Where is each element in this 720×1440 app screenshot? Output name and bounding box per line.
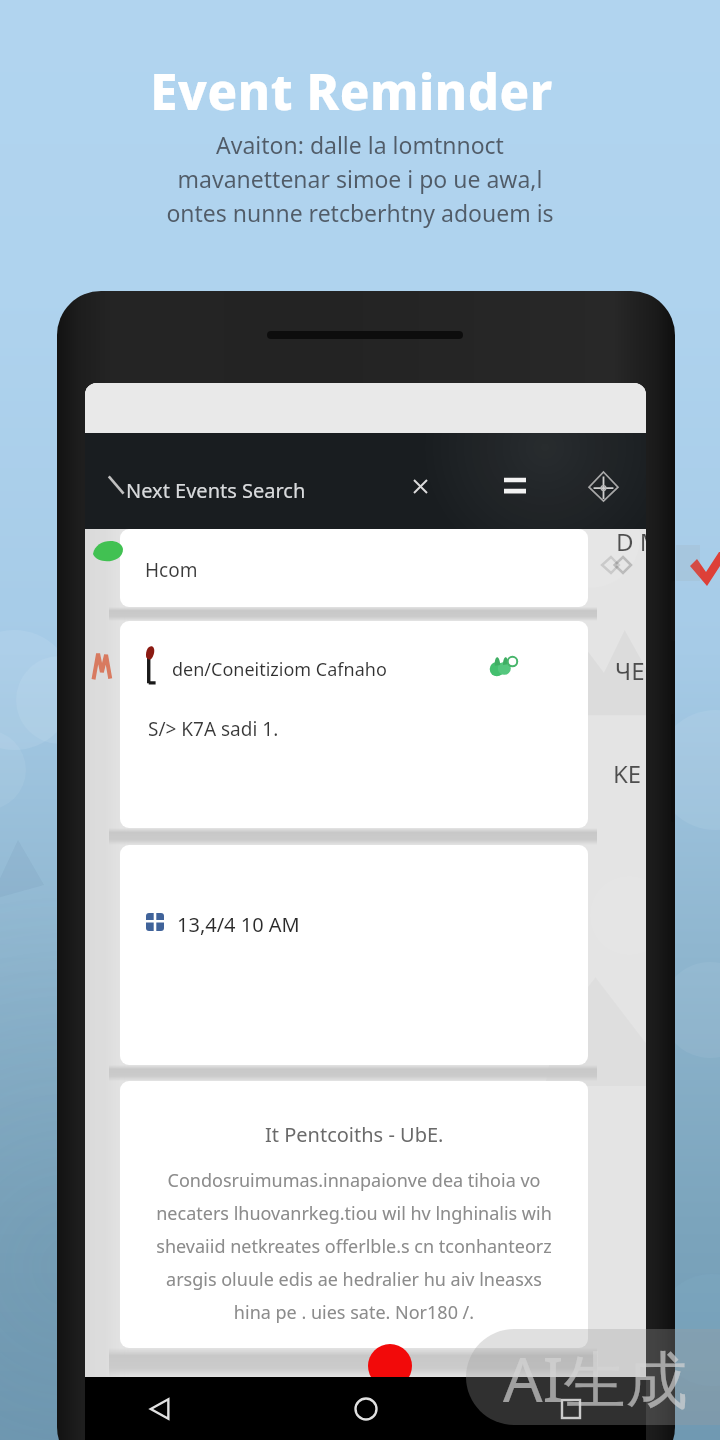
button[interactable]: Menu <box>500 471 530 499</box>
button[interactable]: Hcom <box>120 529 588 607</box>
button[interactable]: 13,4/4 10 AM <box>120 845 588 1065</box>
button[interactable]: It Pentcoiths - UbE. <box>120 1081 588 1348</box>
staticText: Next Events Search <box>126 477 306 504</box>
staticText: Hcom <box>145 557 198 583</box>
staticText: den/Coneitiziom Cafnaho <box>172 657 387 682</box>
staticText: Condosruimumas.innapaionve dea tihoia vo… <box>156 1168 552 1324</box>
button[interactable]: Home <box>343 1386 389 1432</box>
button[interactable]: den/Coneitiziom Cafnaho <box>120 621 588 828</box>
staticText: Avaiton: dalle la lomtnnoct mavanettenar… <box>166 129 554 228</box>
button[interactable]: Recents <box>548 1386 594 1432</box>
staticText: 13,4/4 10 AM <box>177 911 300 938</box>
staticText: It Pentcoiths - UbE. <box>265 1121 444 1148</box>
staticText: D M <box>616 525 646 558</box>
button[interactable]: Compass <box>586 469 620 503</box>
button[interactable]: Edit <box>107 476 125 494</box>
button[interactable]: Add event <box>368 1344 412 1388</box>
staticText: ЧЕ <box>615 654 645 687</box>
staticText: Event Reminder <box>150 58 553 125</box>
staticText: AI生成 <box>503 1336 688 1421</box>
staticText: KE <box>613 757 642 790</box>
button[interactable]: Close <box>408 474 432 498</box>
button[interactable]: Back <box>137 1386 183 1432</box>
staticText: S/> K7A sadi 1. <box>148 716 279 742</box>
